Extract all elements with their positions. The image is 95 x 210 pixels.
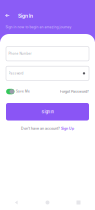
staticText: Sign In xyxy=(41,109,53,114)
button[interactable]: Save Me xyxy=(6,89,30,94)
staticText: Password xyxy=(9,71,24,75)
staticText: Phone Number xyxy=(9,52,32,56)
button[interactable]: Sign Up xyxy=(61,126,74,131)
staticText: Sign Up xyxy=(61,126,74,131)
button[interactable]: Back xyxy=(3,12,11,19)
button[interactable]: Back xyxy=(1,199,32,205)
button[interactable]: Sign In xyxy=(6,103,89,120)
staticText: Sign in now to begin an amazing journey xyxy=(5,25,71,29)
staticText: Sign In xyxy=(18,13,33,19)
staticText: Forgot Password? xyxy=(60,89,89,94)
button[interactable]: Recents xyxy=(63,199,94,205)
button[interactable]: Home xyxy=(32,199,63,205)
staticText: Save Me xyxy=(16,90,30,93)
button[interactable]: Forgot Password? xyxy=(60,89,89,94)
staticText: Don't have an account? xyxy=(21,126,60,131)
